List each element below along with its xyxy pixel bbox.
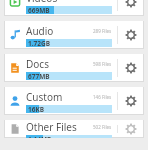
staticText: 1.14MB (28, 135, 52, 138)
staticText: Custom (26, 90, 63, 104)
button[interactable]: Settings for Custom (118, 87, 144, 115)
staticText: 289 Files (93, 28, 112, 34)
button[interactable]: Custom (4, 87, 144, 115)
staticText: 1.72GB (28, 39, 51, 47)
button[interactable]: Settings for Audio (118, 21, 144, 49)
staticText: Docs (26, 57, 49, 71)
button[interactable]: Docs (4, 54, 144, 82)
staticText: 16KB (28, 105, 45, 113)
staticText: Videos (26, 0, 58, 5)
staticText: 677MB (28, 72, 50, 80)
staticText: 146 Files (93, 94, 112, 100)
button[interactable]: Settings for Other Files (118, 120, 144, 138)
staticText: 502 Files (93, 124, 112, 130)
staticText: 669MB (28, 6, 50, 14)
staticText: 598 Files (93, 61, 112, 67)
button[interactable]: Settings for Videos (118, 0, 144, 16)
button[interactable]: Settings for Docs (118, 54, 144, 82)
button[interactable]: Other Files (4, 120, 144, 138)
staticText: Other Files (26, 120, 77, 134)
staticText: Audio (26, 24, 54, 38)
button[interactable]: Videos (4, 0, 144, 16)
button[interactable]: Audio (4, 21, 144, 49)
